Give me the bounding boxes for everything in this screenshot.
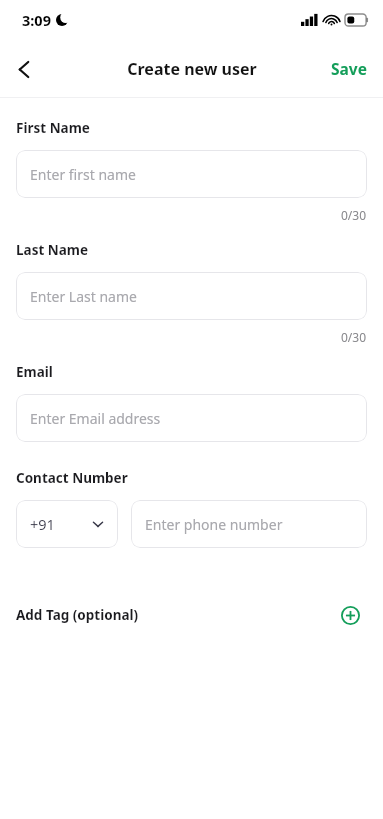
staticText: Add Tag (optional) bbox=[16, 606, 139, 624]
button[interactable]: Enter phone number bbox=[131, 500, 367, 548]
button[interactable]: +91 bbox=[16, 500, 118, 548]
staticText: Enter Last name bbox=[30, 287, 137, 306]
staticText: 0/30 bbox=[341, 207, 367, 223]
staticText: Save bbox=[331, 58, 367, 79]
button[interactable]: Back bbox=[0, 45, 48, 93]
staticText: 0/30 bbox=[341, 329, 367, 345]
staticText: 3:09 bbox=[22, 10, 51, 30]
staticText: +91 bbox=[30, 514, 55, 534]
staticText: Enter phone number bbox=[145, 515, 283, 534]
staticText: Contact Number bbox=[16, 469, 128, 487]
staticText: Last Name bbox=[16, 241, 89, 259]
button[interactable]: Save bbox=[315, 46, 383, 91]
button[interactable]: Enter Last name bbox=[16, 272, 367, 320]
button[interactable]: Enter first name bbox=[16, 150, 367, 198]
button[interactable]: Add Tag bbox=[333, 598, 367, 632]
staticText: Enter first name bbox=[30, 165, 136, 184]
staticText: Enter Email address bbox=[30, 409, 161, 428]
staticText: Email bbox=[16, 363, 53, 381]
staticText: Create new user bbox=[127, 58, 257, 80]
button[interactable]: Enter Email address bbox=[16, 394, 367, 442]
staticText: First Name bbox=[16, 119, 90, 137]
